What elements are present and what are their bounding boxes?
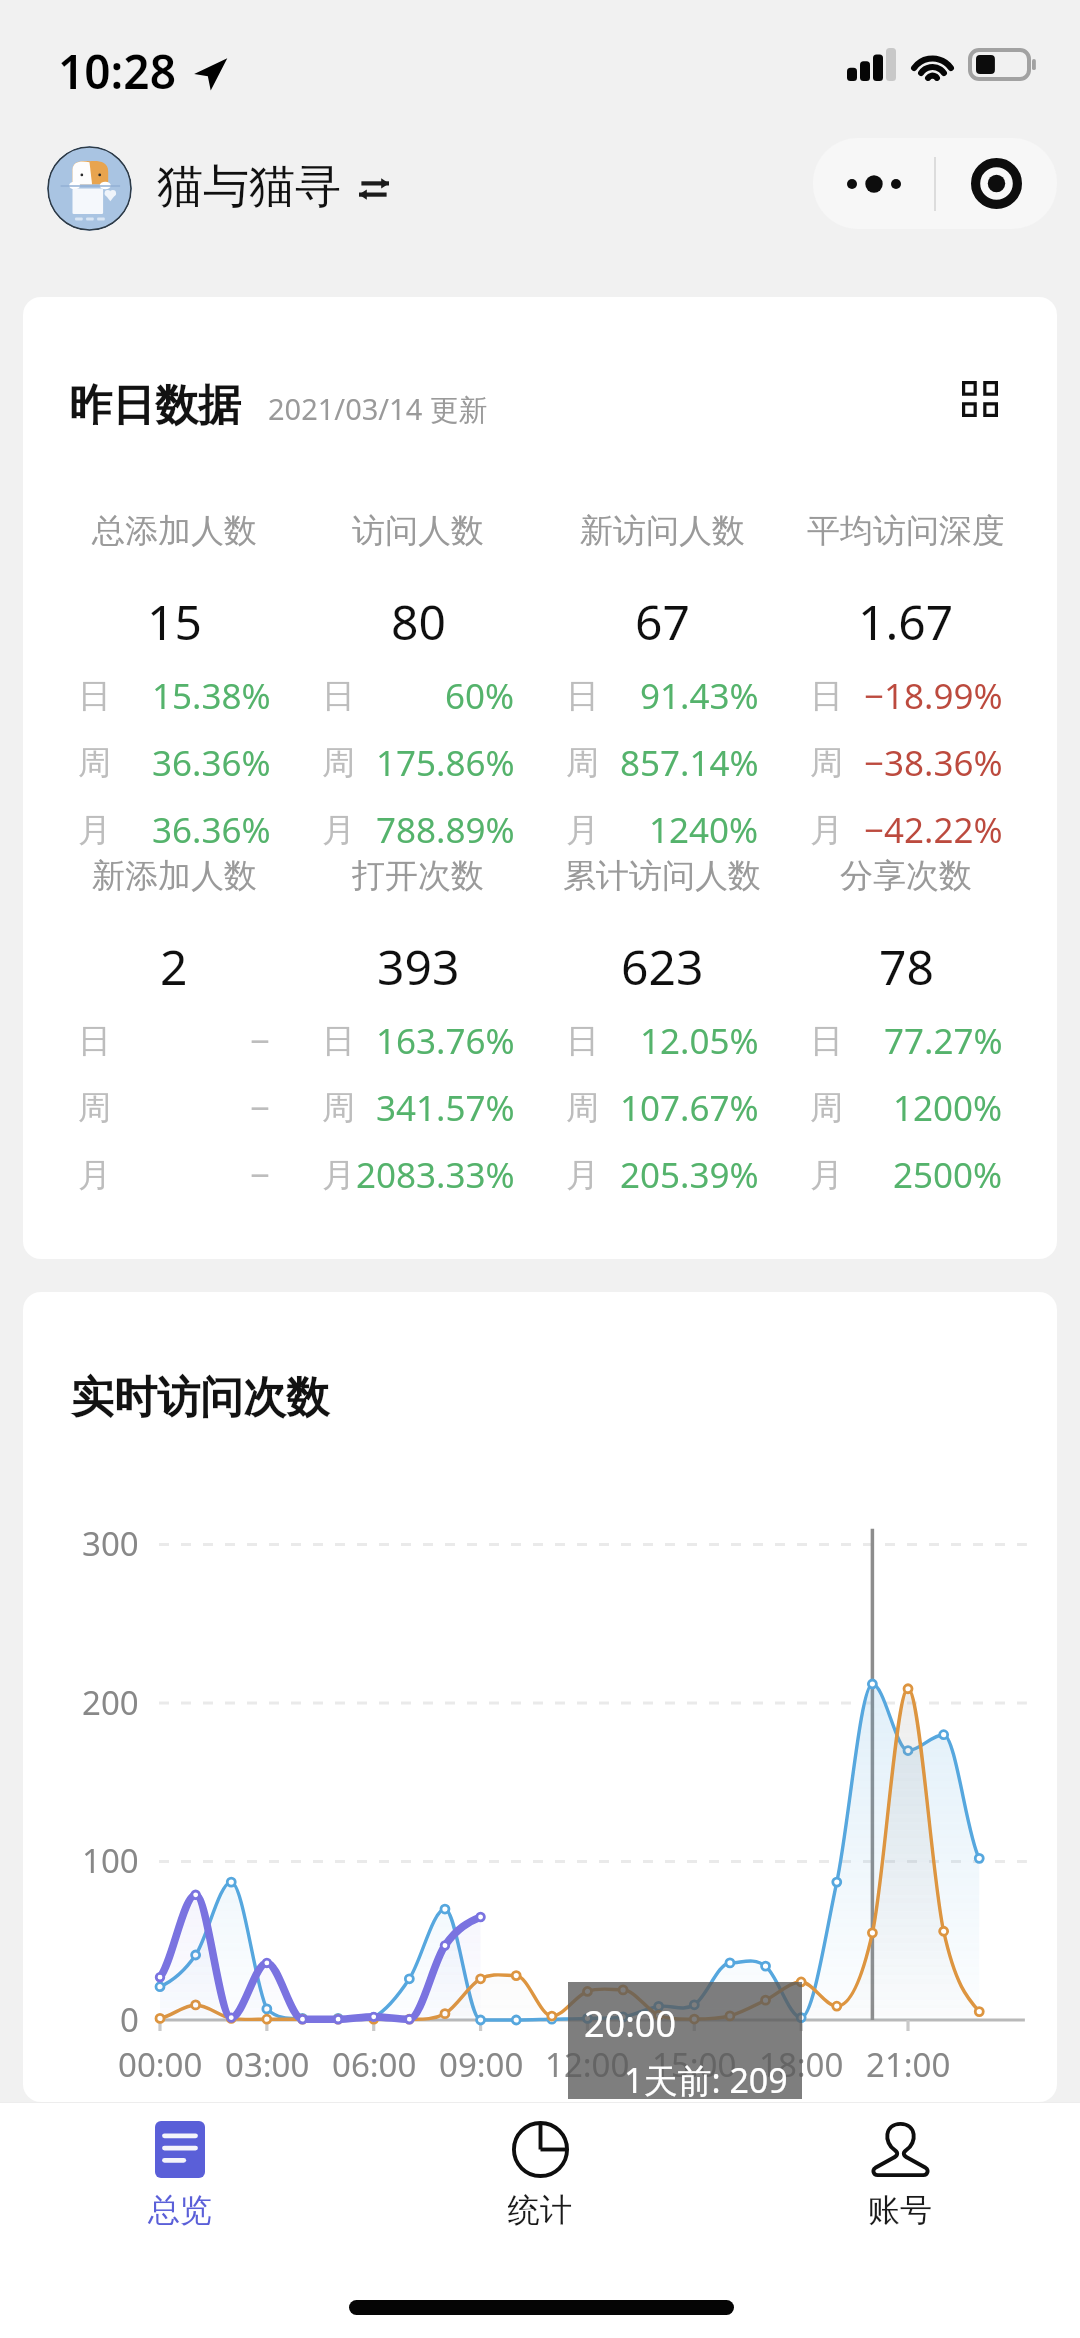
staticText: 175.86% [376,739,515,787]
staticText: 623 [621,934,704,999]
staticText: 周 [78,1087,111,1129]
staticText: 日 [78,675,111,717]
staticText: −42.22% [864,806,1003,854]
button[interactable]: 账号 [720,2102,1080,2262]
staticText: 341.57% [376,1084,515,1132]
staticText: 36.36% [152,739,271,787]
button[interactable]: 打开次数 [293,846,543,1186]
button[interactable]: Grid layout [945,364,1015,434]
staticText: 月 [566,809,599,851]
staticText: 新添加人数 [92,855,257,897]
staticText: 周 [810,742,843,784]
staticText: 77.27% [884,1017,1003,1065]
staticText: 月 [78,809,111,851]
staticText: 36.36% [152,806,271,854]
button[interactable]: 分享次数 [781,846,1031,1186]
staticText: 163.76% [376,1017,515,1065]
button[interactable]: 访问人数 [293,501,543,841]
staticText: 12.05% [640,1017,759,1065]
staticText: 857.14% [620,739,759,787]
staticText: 月 [78,1154,111,1196]
staticText: 月 [322,1154,355,1196]
staticText: 205.39% [620,1151,759,1199]
staticText: 20:00 [584,1999,677,2048]
staticText: 200 [82,1680,139,1725]
button[interactable]: 累计访问人数 [537,846,787,1186]
staticText: 月 [322,809,355,851]
staticText: 60% [445,672,515,720]
staticText: 67 [635,589,690,654]
staticText: 昨日数据 [69,379,241,433]
staticText: 00:00 [118,2042,203,2087]
staticText: 09:00 [439,2042,524,2087]
staticText: 日 [78,1020,111,1062]
staticText: 日 [322,1020,355,1062]
staticText: 300 [82,1521,139,1566]
staticText: 统计 [508,2190,572,2230]
button[interactable]: 新访问人数 [537,501,787,841]
staticText: −18.99% [864,672,1003,720]
staticText: − [250,1151,271,1199]
button[interactable]: 新添加人数 [49,846,299,1186]
staticText: 累计访问人数 [563,855,761,897]
button[interactable]: 总览 [0,2102,360,2262]
staticText: 周 [322,742,355,784]
staticText: 0 [120,1997,139,2042]
staticText: 21:00 [866,2042,951,2087]
staticText: 2 [160,934,188,999]
staticText: 12:00 [545,2042,630,2087]
staticText: 10:28 [58,40,176,103]
staticText: 100 [82,1838,139,1883]
staticText: 1240% [649,806,759,854]
staticText: 总览 [148,2190,212,2230]
staticText: 1.67 [858,589,954,654]
staticText: 1天前: 209 [624,2057,788,2102]
staticText: 周 [322,1087,355,1129]
staticText: 日 [810,1020,843,1062]
staticText: 分享次数 [840,855,972,897]
staticText: − [250,1017,271,1065]
staticText: 1200% [893,1084,1003,1132]
staticText: 账号 [868,2190,932,2230]
staticText: 新访问人数 [580,510,745,552]
staticText: 2083.33% [356,1151,515,1199]
staticText: 周 [78,742,111,784]
button[interactable]: Close mini program [936,138,1057,229]
staticText: 平均访问深度 [807,510,1005,552]
staticText: 总添加人数 [92,510,257,552]
staticText: 猫与猫寻 [157,158,341,216]
staticText: 91.43% [640,672,759,720]
staticText: 实时访问次数 [71,1371,329,1425]
staticText: −38.36% [864,739,1003,787]
staticText: 2500% [893,1151,1003,1199]
staticText: 15 [147,589,202,654]
staticText: − [250,1084,271,1132]
button[interactable]: More options [813,138,934,229]
staticText: 日 [322,675,355,717]
button[interactable]: 平均访问深度 [781,501,1031,841]
staticText: 2021/03/14 更新 [268,389,488,429]
staticText: 周 [566,742,599,784]
staticText: 80 [391,589,446,654]
staticText: 393 [377,934,460,999]
staticText: 周 [566,1087,599,1129]
staticText: 月 [810,809,843,851]
staticText: 15:00 [652,2042,737,2087]
staticText: 日 [566,1020,599,1062]
staticText: 月 [810,1154,843,1196]
button[interactable]: 总添加人数 [49,501,299,841]
staticText: 打开次数 [352,855,484,897]
button[interactable]: 猫与猫寻 [47,146,389,231]
staticText: 06:00 [332,2042,417,2087]
button[interactable]: 统计 [360,2102,720,2262]
staticText: 78 [879,934,934,999]
staticText: 访问人数 [352,510,484,552]
staticText: 日 [566,675,599,717]
staticText: 15.38% [152,672,271,720]
staticText: 03:00 [225,2042,310,2087]
staticText: 107.67% [620,1084,759,1132]
staticText: 18:00 [759,2042,844,2087]
staticText: 788.89% [376,806,515,854]
staticText: 日 [810,675,843,717]
staticText: 周 [810,1087,843,1129]
